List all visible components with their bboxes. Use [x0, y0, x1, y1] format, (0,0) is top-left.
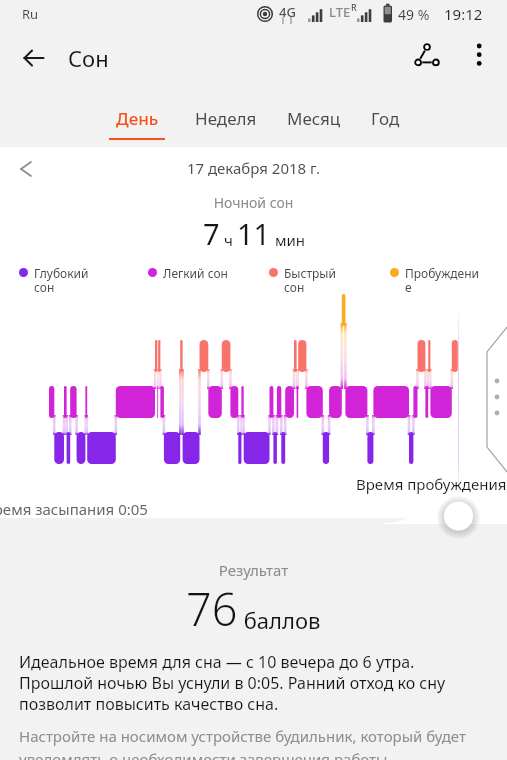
- staticText: Неделя: [195, 107, 257, 130]
- staticText: 7: [203, 214, 220, 253]
- button[interactable]: Add sleep record: [444, 501, 473, 530]
- staticText: Время засыпания 0:05: [0, 499, 148, 519]
- staticText: 49 %: [398, 5, 430, 24]
- staticText: Легкий сон: [163, 265, 228, 281]
- button[interactable]: Back: [12, 36, 56, 80]
- staticText: 19:12: [444, 4, 483, 24]
- staticText: Идеальное время для сна — с 10 вечера до…: [19, 651, 471, 715]
- staticText: День: [116, 107, 159, 130]
- button[interactable]: Год: [356, 101, 415, 146]
- staticText: 17 декабря 2018 г.: [0, 158, 507, 178]
- staticText: LTE: [329, 3, 351, 21]
- staticText: R: [351, 1, 357, 13]
- staticText: 76: [186, 578, 238, 639]
- staticText: Глубокий сон: [34, 265, 89, 296]
- staticText: баллов: [238, 605, 321, 635]
- staticText: Результат: [0, 560, 507, 580]
- button[interactable]: Share: [405, 35, 451, 81]
- staticText: ч: [220, 230, 237, 250]
- button[interactable]: День: [94, 101, 180, 146]
- staticText: 11: [237, 214, 271, 253]
- button[interactable]: More options: [456, 35, 502, 81]
- staticText: мин: [271, 230, 305, 250]
- staticText: Ночной сон: [0, 193, 507, 212]
- button[interactable]: Previous day: [6, 149, 46, 189]
- button[interactable]: Месяц: [272, 101, 356, 146]
- staticText: Пробуждени е: [405, 265, 479, 296]
- staticText: Время пробуждения: [356, 474, 507, 494]
- staticText: Сон: [68, 43, 109, 73]
- staticText: Месяц: [287, 107, 341, 130]
- staticText: Быстрый сон: [284, 265, 336, 296]
- staticText: Настройте на носимом устройстве будильни…: [19, 726, 481, 760]
- staticText: 4G: [279, 3, 296, 21]
- button[interactable]: Неделя: [180, 101, 272, 146]
- staticText: Год: [371, 107, 400, 130]
- staticText: Ru: [22, 5, 39, 23]
